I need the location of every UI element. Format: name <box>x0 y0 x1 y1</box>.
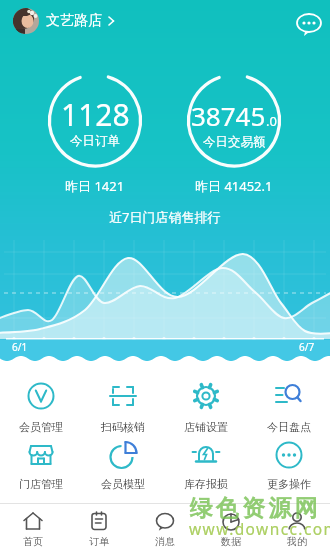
staticText: 会员模型 <box>101 477 145 491</box>
staticText: 我的 <box>287 535 307 548</box>
button[interactable]: 更多操作 <box>247 439 330 491</box>
button[interactable]: 会员管理 <box>0 380 82 434</box>
staticText: www.downcc.com <box>189 518 330 539</box>
button[interactable]: 库存报损 <box>164 439 247 491</box>
staticText: 数据 <box>221 535 241 548</box>
button[interactable]: 门店管理 <box>0 439 82 491</box>
button[interactable]: 店铺设置 <box>164 380 247 434</box>
staticText: 6/1 <box>12 340 28 354</box>
button[interactable]: 首页 <box>0 504 66 548</box>
button[interactable]: 扫码核销 <box>82 380 164 434</box>
staticText: 今日订单 <box>70 133 120 149</box>
button[interactable]: 订单 <box>66 504 132 548</box>
staticText: 文艺路店 <box>46 12 102 30</box>
staticText: 消息 <box>155 535 175 548</box>
staticText: 绿色资源网 <box>188 494 319 523</box>
button[interactable] <box>296 13 324 39</box>
button[interactable]: 数据 <box>198 504 264 548</box>
staticText: 1128 <box>61 94 130 135</box>
staticText: 店铺设置 <box>184 420 228 434</box>
staticText: 6/7 <box>299 340 315 354</box>
staticText: 今日盘点 <box>267 420 311 434</box>
button[interactable]: 我的 <box>264 504 330 548</box>
staticText: 门店管理 <box>19 477 63 491</box>
staticText: 首页 <box>23 535 43 548</box>
staticText: 扫码核销 <box>101 420 145 434</box>
staticText: 昨日 41452.1 <box>195 177 273 195</box>
button[interactable]: 今日盘点 <box>247 380 330 434</box>
staticText: 今日交易额 <box>203 134 266 150</box>
staticText: .0 <box>266 112 277 130</box>
staticText: 更多操作 <box>267 477 311 491</box>
staticText: 会员管理 <box>19 420 63 434</box>
button[interactable]: 文艺路店 <box>13 8 116 34</box>
staticText: 订单 <box>89 535 109 548</box>
staticText: 近7日门店销售排行 <box>109 208 221 226</box>
staticText: 38745 <box>191 98 266 133</box>
staticText: 昨日 1421 <box>65 177 125 195</box>
button[interactable]: 消息 <box>132 504 198 548</box>
button[interactable]: 会员模型 <box>82 439 164 491</box>
staticText: 库存报损 <box>184 477 228 491</box>
